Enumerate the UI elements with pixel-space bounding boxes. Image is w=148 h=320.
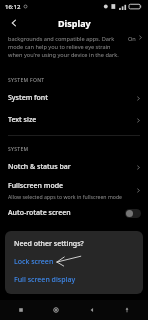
button[interactable]: Back: [77, 300, 107, 320]
staticText: On: [128, 35, 136, 43]
staticText: System font: [8, 93, 48, 103]
staticText: SYSTEM: [8, 146, 29, 153]
button[interactable]: Lock screen: [14, 257, 54, 267]
button[interactable]: Auto-rotate screen: [0, 202, 148, 224]
button[interactable]: Fullscreen mode: [0, 178, 148, 202]
button[interactable]: backgrounds and compatible apps. Dark mo…: [0, 33, 148, 63]
button[interactable]: Home: [41, 300, 71, 320]
button[interactable]: Back: [6, 15, 22, 31]
staticText: 16:12: [5, 3, 21, 11]
staticText: Auto-rotate screen: [8, 208, 125, 218]
staticText: SYSTEM FONT: [8, 77, 45, 84]
button[interactable]: Full screen display: [14, 275, 76, 285]
button[interactable]: Text size: [0, 109, 148, 131]
staticText: Text size: [8, 115, 37, 125]
staticText: Notch & status bar: [8, 162, 71, 172]
button[interactable]: Auto-rotate screen toggle: [125, 209, 141, 218]
staticText: Display: [58, 17, 91, 29]
staticText: Need other settings?: [14, 239, 84, 249]
button[interactable]: System font: [0, 87, 148, 109]
staticText: Fullscreen mode: [8, 181, 64, 191]
button[interactable]: Up: [112, 300, 142, 320]
staticText: Allow selected apps to work in fullscree…: [8, 193, 123, 200]
button[interactable]: Notch & status bar: [0, 156, 148, 178]
button[interactable]: Recents: [6, 300, 36, 320]
staticText: backgrounds and compatible apps. Dark mo…: [8, 35, 125, 59]
